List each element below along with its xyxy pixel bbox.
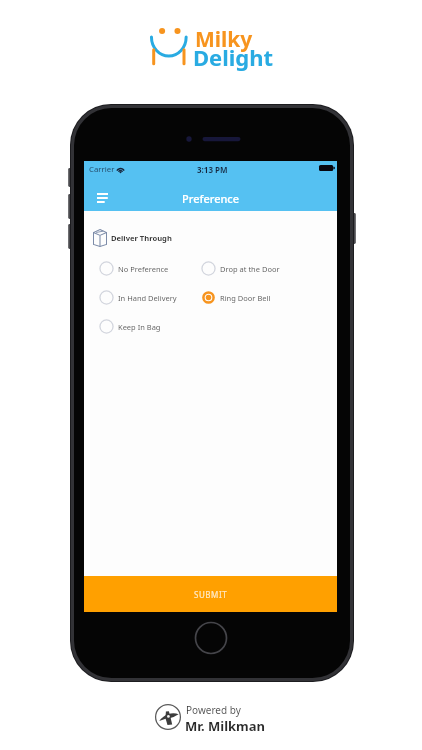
staticText: SUBMIT: [194, 589, 228, 600]
staticText: Delight: [193, 42, 274, 72]
button[interactable]: In Hand Delivery: [99, 290, 201, 305]
button[interactable]: Drop at the Door: [201, 261, 311, 276]
staticText: Keep In Bag: [118, 322, 161, 332]
staticText: Carrier: [89, 164, 115, 175]
button[interactable]: No Preference: [99, 261, 201, 276]
staticText: Preference: [182, 191, 240, 206]
button[interactable]: Ring Door Bell: [201, 290, 311, 305]
staticText: No Preference: [118, 264, 169, 274]
staticText: Ring Door Bell: [220, 293, 271, 303]
staticText: 3:13 PM: [197, 164, 228, 175]
staticText: In Hand Delivery: [118, 293, 177, 303]
button[interactable]: SUBMIT: [84, 576, 337, 612]
staticText: Milky: [195, 25, 253, 54]
staticText: Drop at the Door: [220, 264, 280, 274]
button[interactable]: Open navigation menu: [97, 192, 108, 204]
staticText: Mr. Milkman: [185, 717, 266, 735]
staticText: Powered by: [186, 703, 241, 717]
staticText: Deliver Through: [111, 233, 172, 243]
button[interactable]: Keep In Bag: [99, 319, 201, 334]
